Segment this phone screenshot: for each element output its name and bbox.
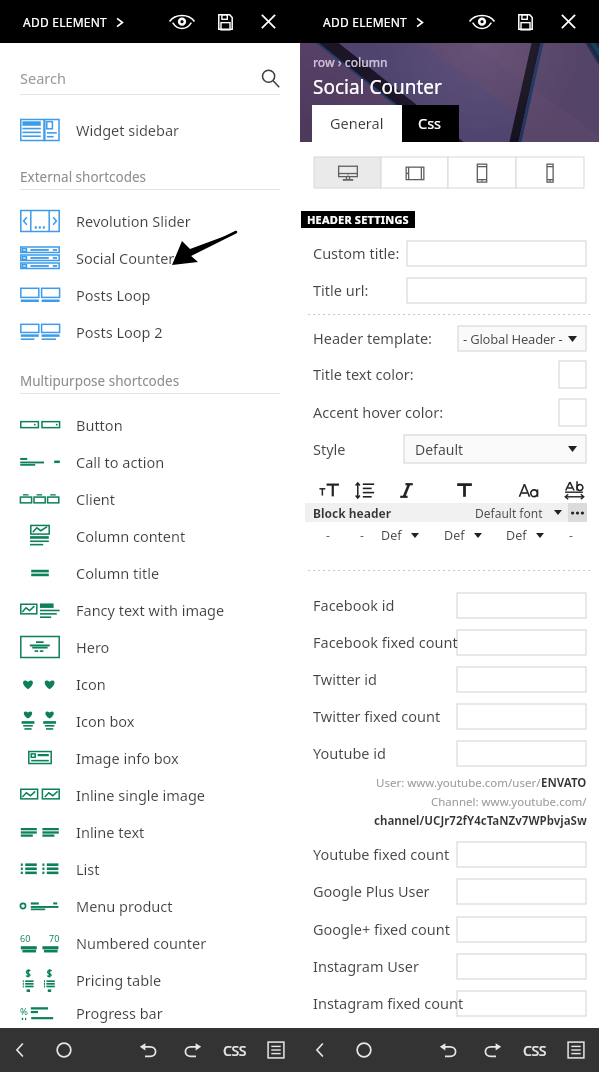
- button[interactable]: Menu: [558, 1028, 594, 1072]
- staticText: -: [569, 527, 573, 543]
- staticText: ADD ELEMENT: [23, 14, 108, 30]
- staticText: Instagram User: [313, 956, 419, 976]
- staticText: Default font: [475, 505, 543, 521]
- button[interactable]: Widget sidebar: [0, 111, 300, 148]
- button[interactable]: Accent hover color:: [559, 399, 586, 426]
- button[interactable]: Social Counter: [0, 239, 300, 276]
- staticText: External shortcodes: [20, 168, 147, 186]
- button[interactable]: Icon box: [0, 702, 300, 739]
- button[interactable]: Font size: [312, 473, 346, 507]
- button[interactable]: Twitter fixed count: [457, 704, 586, 729]
- staticText: Twitter fixed count: [313, 706, 441, 726]
- button[interactable]: Redo: [474, 1028, 510, 1072]
- button[interactable]: Style: [404, 435, 586, 463]
- button[interactable]: Home: [346, 1028, 382, 1072]
- staticText: HEADER SETTINGS: [307, 212, 409, 227]
- button[interactable]: Search: [20, 63, 280, 93]
- button[interactable]: Google+ fixed count: [457, 917, 586, 942]
- button[interactable]: Option 6: [555, 521, 587, 549]
- button[interactable]: Menu product: [0, 887, 300, 924]
- button[interactable]: CSS: [216, 1028, 254, 1072]
- staticText: Default: [415, 440, 464, 459]
- button[interactable]: Custom title:: [407, 241, 586, 266]
- button[interactable]: Inline single image: [0, 776, 300, 813]
- staticText: Facebook id: [313, 595, 395, 615]
- staticText: Call to action: [76, 452, 165, 472]
- staticText: Custom title:: [313, 243, 400, 263]
- button[interactable]: Desktop: [314, 157, 381, 188]
- button[interactable]: Image info box: [0, 739, 300, 776]
- button[interactable]: Italic: [389, 473, 423, 507]
- button[interactable]: Save: [509, 0, 541, 43]
- staticText: ENVATO: [541, 775, 587, 791]
- button[interactable]: Fancy text with image: [0, 591, 300, 628]
- button[interactable]: Option 3: [381, 521, 435, 549]
- button[interactable]: Hero: [0, 628, 300, 665]
- button[interactable]: CSS: [516, 1028, 554, 1072]
- staticText: Google+ fixed count: [313, 919, 450, 939]
- button[interactable]: Call to action: [0, 443, 300, 480]
- button[interactable]: Close: [252, 0, 284, 43]
- button[interactable]: Header template:: [458, 326, 586, 351]
- button[interactable]: Redo: [174, 1028, 210, 1072]
- button[interactable]: Option 5: [506, 521, 560, 549]
- button[interactable]: Undo: [431, 1028, 467, 1072]
- button[interactable]: Facebook id: [457, 593, 586, 618]
- staticText: Channel: www.youtube.com/: [431, 794, 587, 810]
- button[interactable]: Back: [2, 1028, 38, 1072]
- button[interactable]: Css: [402, 105, 459, 142]
- button[interactable]: Youtube id: [457, 741, 586, 766]
- button[interactable]: Tablet portrait: [448, 157, 516, 188]
- button[interactable]: Home: [46, 1028, 82, 1072]
- button[interactable]: Title text color:: [559, 361, 586, 388]
- button[interactable]: Preview: [466, 0, 498, 43]
- button[interactable]: %: [0, 998, 300, 1028]
- button[interactable]: General: [312, 105, 402, 142]
- staticText: Icon box: [76, 711, 135, 731]
- button[interactable]: Posts Loop: [0, 276, 300, 313]
- button[interactable]: Title url:: [407, 278, 586, 303]
- button[interactable]: Line height: [347, 473, 381, 507]
- staticText: Def: [506, 527, 527, 544]
- button[interactable]: Close: [552, 0, 584, 43]
- button[interactable]: Undo: [131, 1028, 167, 1072]
- button[interactable]: Facebook fixed count: [457, 630, 586, 655]
- staticText: Instagram fixed count: [313, 993, 464, 1013]
- button[interactable]: Twitter id: [457, 667, 586, 692]
- button[interactable]: Google Plus User: [457, 879, 586, 904]
- button[interactable]: Instagram User: [457, 954, 586, 979]
- staticText: Social Counter: [313, 74, 442, 100]
- button[interactable]: Back: [302, 1028, 338, 1072]
- button[interactable]: Client: [0, 480, 300, 517]
- button[interactable]: Column content: [0, 517, 300, 554]
- button[interactable]: ADD ELEMENT: [313, 6, 433, 38]
- button[interactable]: Tablet landscape: [381, 157, 448, 188]
- button[interactable]: Option 2: [346, 521, 378, 549]
- button[interactable]: Instagram fixed count: [457, 991, 586, 1016]
- button[interactable]: More options: [568, 503, 587, 522]
- button[interactable]: 60: [0, 924, 300, 961]
- button[interactable]: Bold: [447, 473, 481, 507]
- button[interactable]: Button: [0, 406, 300, 443]
- button[interactable]: Letter case: [512, 473, 546, 507]
- button[interactable]: Mobile: [516, 157, 584, 188]
- staticText: Twitter id: [313, 669, 377, 689]
- button[interactable]: Preview: [166, 0, 198, 43]
- button[interactable]: Inline text: [0, 813, 300, 850]
- button[interactable]: Column title: [0, 554, 300, 591]
- button[interactable]: Pricing table: [0, 961, 300, 998]
- button[interactable]: Letter spacing: [557, 473, 591, 507]
- button[interactable]: Revolution Slider: [0, 202, 300, 239]
- button[interactable]: Posts Loop 2: [0, 313, 300, 350]
- staticText: Column title: [76, 563, 160, 583]
- button[interactable]: Save: [209, 0, 241, 43]
- button[interactable]: Option 1: [312, 521, 344, 549]
- button[interactable]: Youtube fixed count: [457, 842, 586, 867]
- staticText: CSS: [523, 1041, 547, 1060]
- button[interactable]: List: [0, 850, 300, 887]
- button[interactable]: Option 4: [444, 521, 498, 549]
- staticText: Numbered counter: [76, 933, 207, 953]
- button[interactable]: Icon: [0, 665, 300, 702]
- button[interactable]: Menu: [258, 1028, 294, 1072]
- button[interactable]: ADD ELEMENT: [13, 6, 133, 38]
